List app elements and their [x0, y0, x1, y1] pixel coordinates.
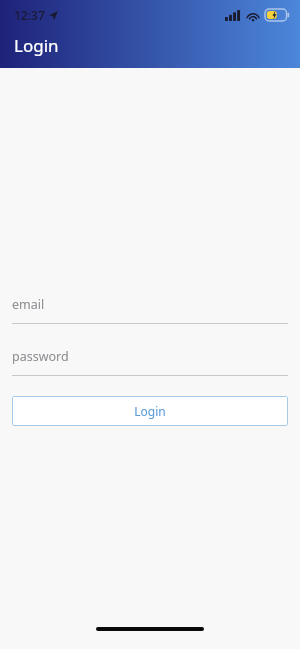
button[interactable]: password: [12, 345, 288, 376]
button[interactable]: email: [12, 293, 288, 324]
staticText: 12:37: [14, 7, 45, 23]
button[interactable]: Login: [12, 396, 288, 426]
staticText: password: [12, 348, 69, 365]
staticText: email: [12, 296, 45, 313]
staticText: Login: [14, 34, 59, 57]
staticText: Login: [134, 403, 166, 419]
